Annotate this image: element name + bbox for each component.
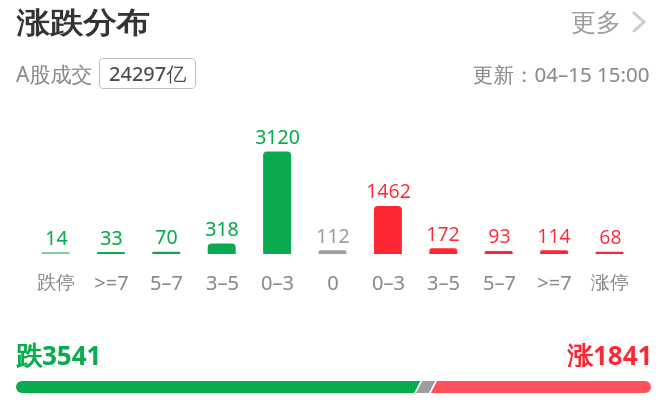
staticText: 318	[205, 215, 239, 238]
staticText: 更多	[571, 7, 621, 38]
staticText: >=7	[94, 269, 129, 293]
staticText: 1462	[366, 177, 411, 200]
staticText: 172	[426, 220, 460, 243]
staticText: 3120	[255, 123, 300, 146]
staticText: 33	[100, 224, 123, 247]
staticText: 3–5	[427, 269, 460, 293]
staticText: 24297亿	[109, 60, 187, 87]
staticText: 更新：04–15 15:00	[473, 60, 650, 86]
staticText: 70	[155, 223, 178, 246]
staticText: 0	[327, 269, 339, 293]
staticText: 5–7	[150, 269, 183, 293]
staticText: 3–5	[206, 269, 239, 293]
button[interactable]: 更多	[563, 2, 653, 44]
button[interactable]: 24297亿	[99, 58, 196, 89]
staticText: >=7	[537, 269, 572, 293]
staticText: 涨跌分布	[16, 5, 149, 42]
staticText: 14	[45, 224, 68, 247]
staticText: A股成交	[16, 60, 93, 89]
staticText: 114	[537, 222, 571, 245]
staticText: 5–7	[483, 269, 516, 293]
staticText: 0–3	[261, 269, 294, 293]
staticText: 112	[316, 222, 350, 245]
staticText: 93	[488, 222, 511, 245]
staticText: 涨1841	[567, 337, 653, 367]
button[interactable]: 涨跌分布图	[0, 100, 660, 300]
staticText: 涨停	[591, 271, 629, 295]
staticText: 跌停	[37, 271, 75, 295]
staticText: 0–3	[372, 269, 405, 293]
staticText: 68	[599, 223, 622, 246]
staticText: 跌3541	[16, 337, 102, 373]
